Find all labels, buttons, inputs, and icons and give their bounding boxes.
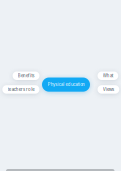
staticText: Physical education [48, 82, 84, 87]
button[interactable]: What [97, 71, 118, 80]
staticText: teachers role [8, 87, 34, 92]
button[interactable]: Physical education [42, 77, 90, 92]
staticText: Benefits [18, 73, 34, 78]
staticText: What [103, 73, 113, 78]
button[interactable]: Views [97, 85, 119, 94]
button[interactable]: teachers role [2, 85, 39, 94]
staticText: Views [103, 87, 114, 92]
button[interactable]: Benefits [13, 71, 39, 80]
